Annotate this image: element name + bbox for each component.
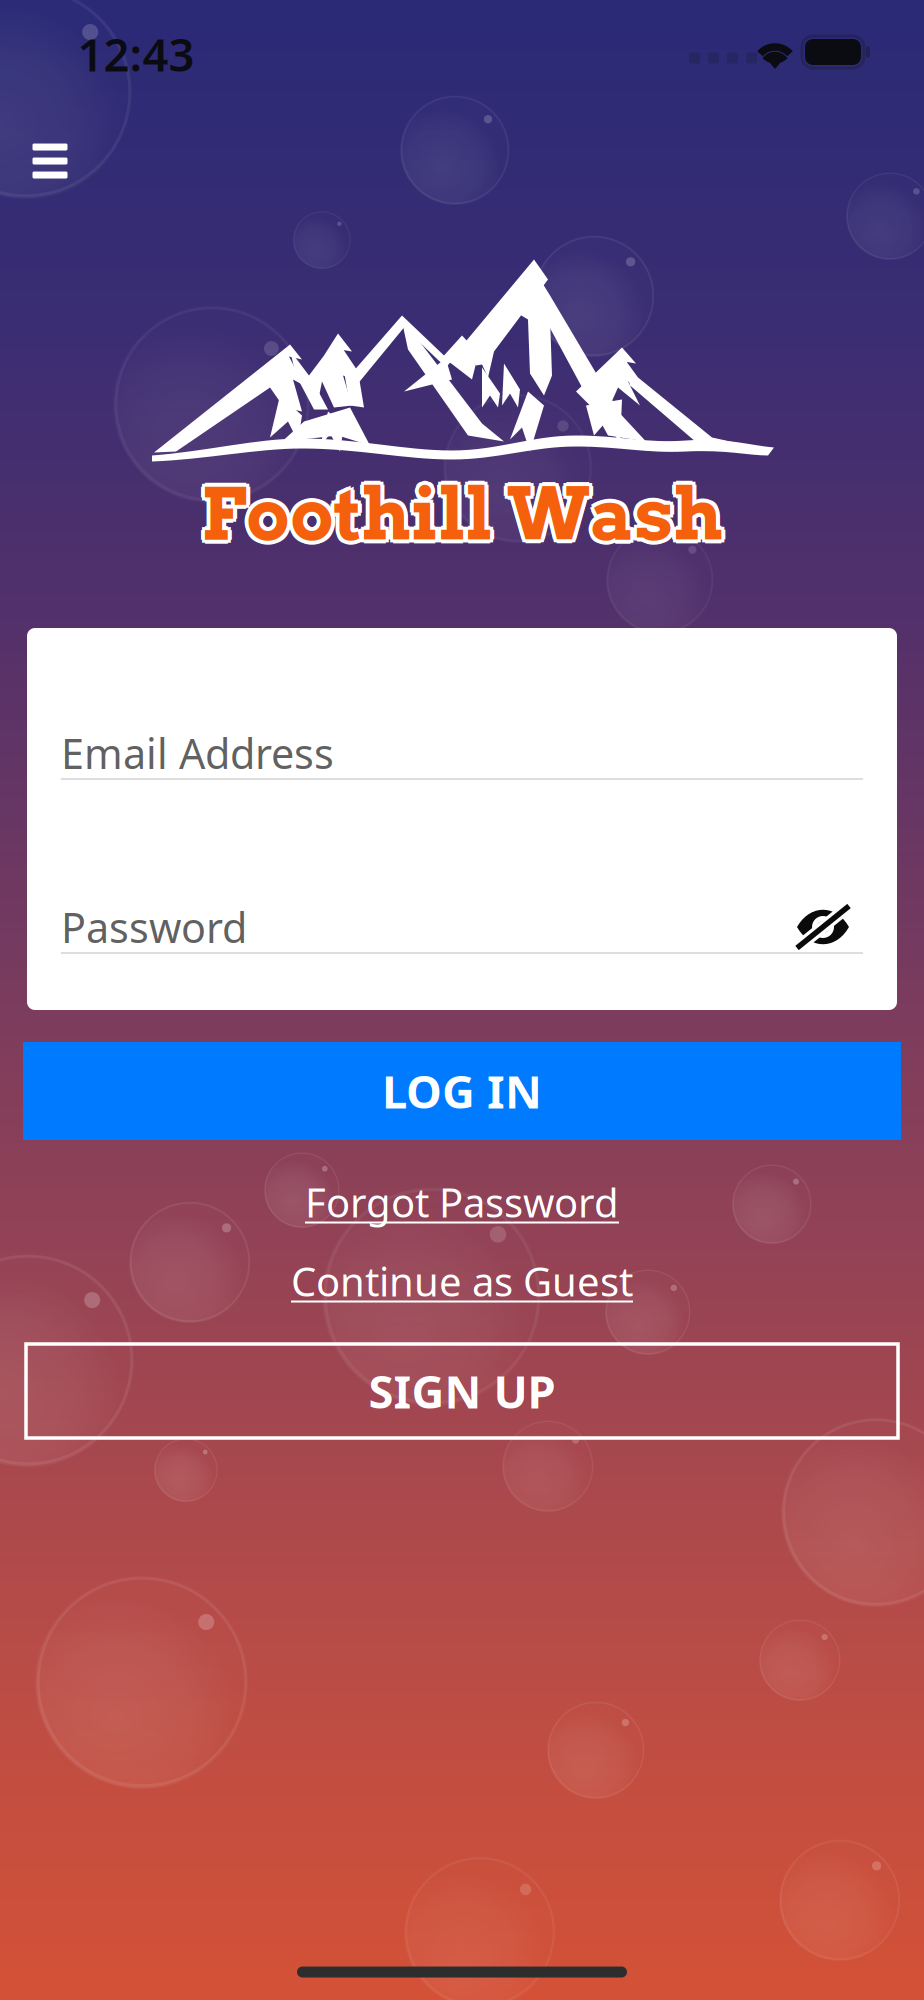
staticText: Email Address <box>61 726 334 780</box>
staticText: Password <box>61 900 247 954</box>
staticText: Foothill Wash <box>204 473 726 560</box>
staticText: SIGN UP <box>368 1361 555 1421</box>
staticText: Foothill Wash <box>204 467 726 554</box>
button[interactable]: Continue as Guest <box>275 1244 649 1317</box>
staticText: Foothill Wash <box>197 470 719 557</box>
staticText: Foothill Wash <box>205 470 727 557</box>
staticText: LOG IN <box>382 1061 542 1121</box>
staticText: Continue as Guest <box>291 1254 633 1307</box>
button[interactable]: Show password <box>783 902 863 952</box>
button[interactable]: SIGN UP <box>26 1344 898 1438</box>
button[interactable]: Forgot Password <box>289 1165 635 1238</box>
staticText: Foothill Wash <box>201 466 723 553</box>
button[interactable]: LOG IN <box>23 1042 901 1140</box>
staticText: Foothill Wash <box>201 470 723 557</box>
staticText: 12:43 <box>77 24 194 84</box>
staticText: Forgot Password <box>305 1175 619 1228</box>
staticText: Foothill Wash <box>201 474 723 561</box>
button[interactable]: Menu <box>4 115 96 207</box>
staticText: Foothill Wash <box>198 467 720 554</box>
staticText: Foothill Wash <box>198 473 720 560</box>
